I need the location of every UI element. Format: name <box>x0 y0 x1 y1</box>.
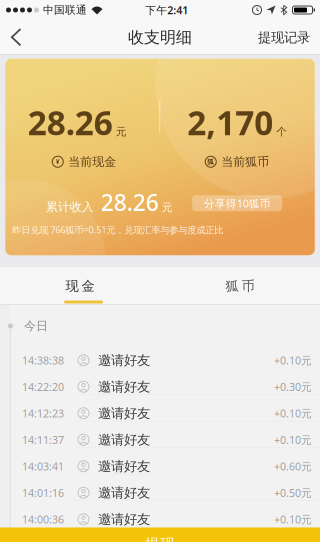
staticText: +0.10元 <box>274 433 312 447</box>
staticText: 狐 <box>207 158 214 166</box>
staticText: ¥ <box>56 157 60 166</box>
button[interactable]: 现金 <box>0 267 160 305</box>
staticText: 2,170 <box>187 100 273 144</box>
button[interactable]: 狐币 <box>160 267 320 305</box>
staticText: 提现记录 <box>258 29 310 46</box>
staticText: 个 <box>276 125 287 138</box>
staticText: +0.10元 <box>274 512 312 526</box>
staticText: 14:11:37 <box>22 433 64 447</box>
staticText: 元 <box>116 125 127 138</box>
button[interactable]: 提现记录 <box>258 29 320 46</box>
staticText: +0.50元 <box>274 486 312 500</box>
staticText: 28.26 <box>101 187 159 217</box>
staticText: 昨日兑现 766狐币=0.51元，兑现汇率与参与度成正比 <box>12 224 223 236</box>
staticText: +0.10元 <box>274 353 312 367</box>
staticText: 14:01:16 <box>22 486 64 500</box>
staticText: 邀请好友 <box>98 511 150 527</box>
staticText: 现金 <box>65 278 94 294</box>
staticText: +0.60元 <box>274 459 312 473</box>
button[interactable]: 分享得10狐币 <box>192 195 282 211</box>
staticText: 14:00:36 <box>22 512 64 526</box>
staticText: 分享得10狐币 <box>204 196 271 210</box>
staticText: 当前狐币 <box>221 154 269 169</box>
staticText: 邀请好友 <box>98 432 150 448</box>
button[interactable]: Back <box>0 20 22 55</box>
staticText: 28.26 <box>28 100 113 144</box>
staticText: 14:12:23 <box>22 406 64 420</box>
staticText: 邀请好友 <box>98 405 150 421</box>
staticText: 狐币 <box>225 278 254 294</box>
button[interactable]: 提现 <box>0 527 320 542</box>
staticText: 中国联通 <box>43 3 87 16</box>
staticText: 邀请好友 <box>98 352 150 368</box>
staticText: +0.30元 <box>274 380 312 394</box>
staticText: 当前现金 <box>68 154 116 169</box>
staticText: 14:38:38 <box>22 353 64 367</box>
staticText: +0.10元 <box>274 406 312 420</box>
staticText: 邀请好友 <box>98 458 150 474</box>
staticText: 元 <box>162 201 173 214</box>
staticText: 14:03:41 <box>22 459 64 473</box>
staticText: 收支明细 <box>128 28 192 47</box>
staticText: 累计收入 <box>46 200 94 214</box>
staticText: 今日 <box>24 319 48 333</box>
staticText: 邀请好友 <box>98 485 150 501</box>
staticText: 14:22:20 <box>22 380 64 394</box>
staticText: 下午2:41 <box>145 3 188 17</box>
staticText: 提现 <box>145 535 175 542</box>
staticText: 邀请好友 <box>98 379 150 395</box>
